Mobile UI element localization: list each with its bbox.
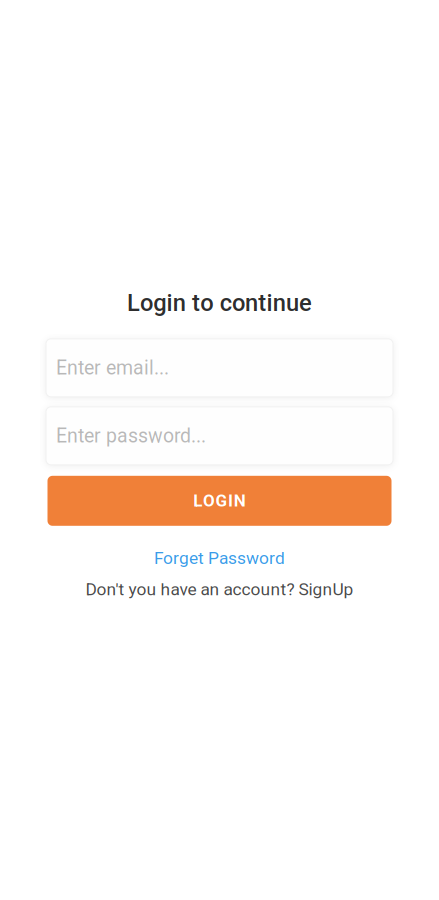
button[interactable]: LOGIN (47, 476, 391, 526)
button[interactable]: Forget Password (154, 548, 285, 568)
staticText: Login to continue (127, 289, 312, 317)
button[interactable]: Enter email... (46, 339, 393, 397)
staticText: Enter password... (56, 424, 206, 447)
button[interactable]: Don't you have an account? SignUp (85, 579, 353, 599)
staticText: Enter email... (56, 356, 169, 379)
staticText: LOGIN (193, 491, 246, 511)
button[interactable]: Enter password... (46, 407, 393, 465)
staticText: Forget Password (154, 548, 285, 568)
staticText: Don't you have an account? SignUp (85, 579, 353, 599)
